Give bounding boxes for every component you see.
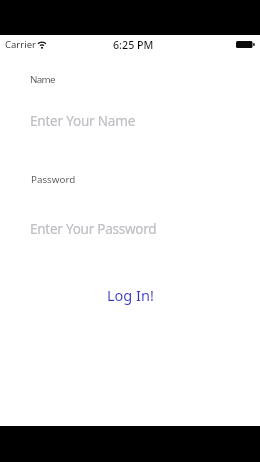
staticText: Name	[30, 73, 55, 86]
staticText: 6:25 PM	[113, 38, 154, 53]
staticText: Enter Your Password	[30, 220, 157, 238]
staticText: Log In!	[107, 285, 154, 305]
staticText: Password	[31, 173, 76, 186]
staticText: Carrier	[5, 38, 36, 51]
button[interactable]: Enter Your Name	[28, 106, 232, 132]
button[interactable]: Log In!	[107, 284, 154, 304]
staticText: Enter Your Name	[30, 112, 136, 130]
button[interactable]: Enter Your Password	[28, 216, 232, 242]
